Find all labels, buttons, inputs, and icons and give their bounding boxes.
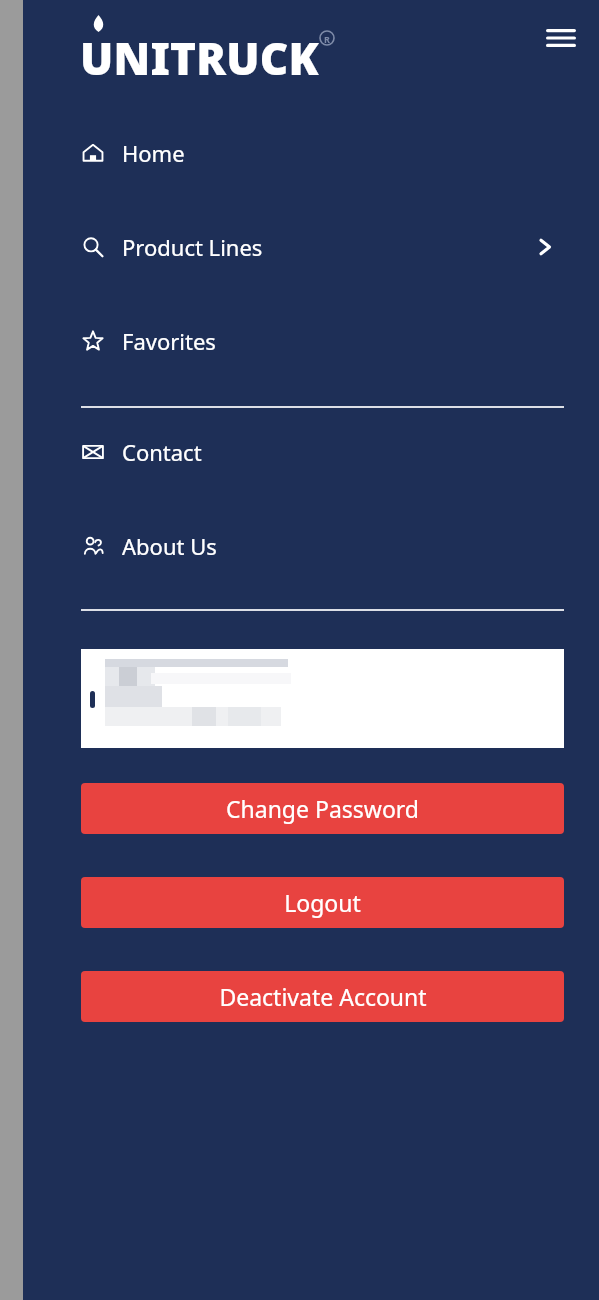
staticText: Deactivate Account [219,981,427,1012]
button[interactable] [81,649,564,748]
button[interactable]: Logout [81,877,564,928]
other: Expand [528,230,562,264]
button[interactable]: Home [23,136,599,170]
staticText: UNITRUCK [80,28,319,88]
staticText: Change Password [226,793,419,824]
button[interactable]: Change Password [81,783,564,834]
button[interactable]: About Us [23,529,599,563]
staticText: R [324,33,330,45]
staticText: Contact [122,437,202,467]
button[interactable]: Contact [23,435,599,469]
button[interactable]: Favorites [23,324,599,358]
staticText: Product Lines [122,232,263,262]
button[interactable]: Deactivate Account [81,971,564,1022]
staticText: Favorites [122,326,216,356]
button[interactable]: Product Lines [23,230,599,264]
button[interactable]: Menu [537,14,585,62]
staticText: About Us [122,531,217,561]
staticText: Logout [284,887,361,918]
staticText: Home [122,138,185,168]
